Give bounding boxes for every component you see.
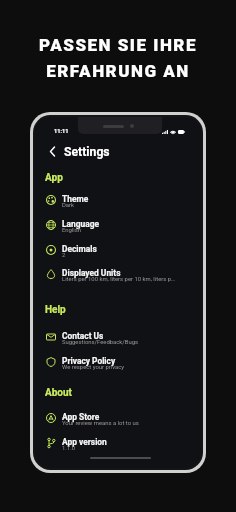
staticText: Dark xyxy=(62,202,75,209)
staticText: Suggestions/Feedback/Bugs xyxy=(62,339,139,346)
staticText: 2 xyxy=(62,252,66,259)
button[interactable]: Contact Us xyxy=(35,326,201,348)
staticText: PASSEN SIE IHRE xyxy=(39,35,197,55)
staticText: Theme xyxy=(62,194,89,204)
staticText: Help xyxy=(45,304,66,316)
staticText: App Store xyxy=(62,412,100,422)
button[interactable]: Back xyxy=(46,145,59,158)
staticText: 1.1.0 xyxy=(62,445,76,452)
staticText: ERFAHRUNG AN xyxy=(46,61,190,81)
button[interactable]: Privacy Policy xyxy=(35,351,201,373)
button[interactable]: Language xyxy=(35,214,201,236)
staticText: We respect your privacy xyxy=(62,364,125,371)
staticText: Settings xyxy=(64,145,110,159)
staticText: 11:11 xyxy=(54,128,69,135)
staticText: Your review means a lot to us xyxy=(62,420,139,427)
staticText: Contact Us xyxy=(62,331,104,341)
staticText: Privacy Policy xyxy=(62,356,116,366)
button[interactable]: App version xyxy=(35,432,201,454)
staticText: Displayed Units xyxy=(62,268,121,278)
staticText: Language xyxy=(62,219,100,229)
staticText: English xyxy=(62,227,82,234)
staticText: Decimals xyxy=(62,244,97,254)
staticText: App xyxy=(45,172,63,184)
button[interactable]: App Store xyxy=(35,407,201,429)
button[interactable]: Theme xyxy=(35,189,201,211)
staticText: About xyxy=(45,387,72,399)
staticText: App version xyxy=(62,437,107,447)
button[interactable]: Decimals xyxy=(35,239,201,261)
staticText: Liters per 100 km, liters per 10 km, lit… xyxy=(62,276,176,283)
button[interactable]: Displayed Units xyxy=(35,263,201,285)
